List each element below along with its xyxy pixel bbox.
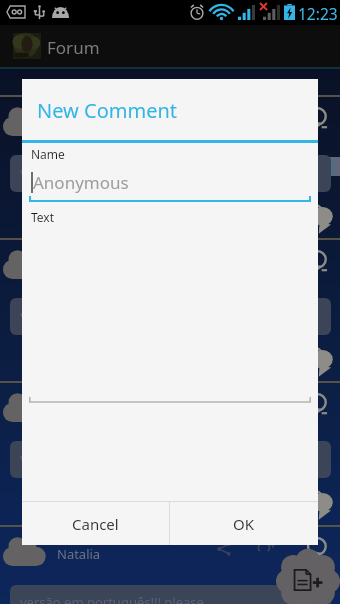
staticText: versão em português!!! please [20,593,204,604]
button[interactable]: Cancel [22,502,169,545]
staticText: Forum [47,36,100,59]
staticText: Cancel [72,514,119,534]
button[interactable]: Natalia [0,383,340,524]
other: Reply [258,540,276,558]
staticText: Natalia [57,401,101,419]
staticText: Text [31,209,55,225]
button[interactable]: OK [170,502,318,545]
staticText: 12:23 [298,3,338,24]
button[interactable]: Natalia [0,527,340,604]
staticText: versão em português!!! please [20,306,204,324]
staticText: Anonymous [33,171,129,194]
staticText: OK [233,514,255,534]
staticText: New Comment [37,97,177,124]
button[interactable]: New post [276,548,340,604]
staticText: Natalia [57,545,101,563]
other: Comments [302,490,340,520]
staticText: Name [31,146,65,162]
other: Reply [258,396,276,414]
other: Share [216,541,232,557]
other: Share [216,397,232,413]
button[interactable]: Natalia [0,240,340,381]
button[interactable]: Natalia [0,97,340,238]
staticText: versão em português!!! please [20,449,204,467]
other: Comments [302,347,340,377]
staticText: Natalia [57,115,101,133]
other: Comments [302,204,340,234]
button[interactable]: Close ad [317,157,340,176]
staticText: versão em português!!! please [20,163,204,181]
